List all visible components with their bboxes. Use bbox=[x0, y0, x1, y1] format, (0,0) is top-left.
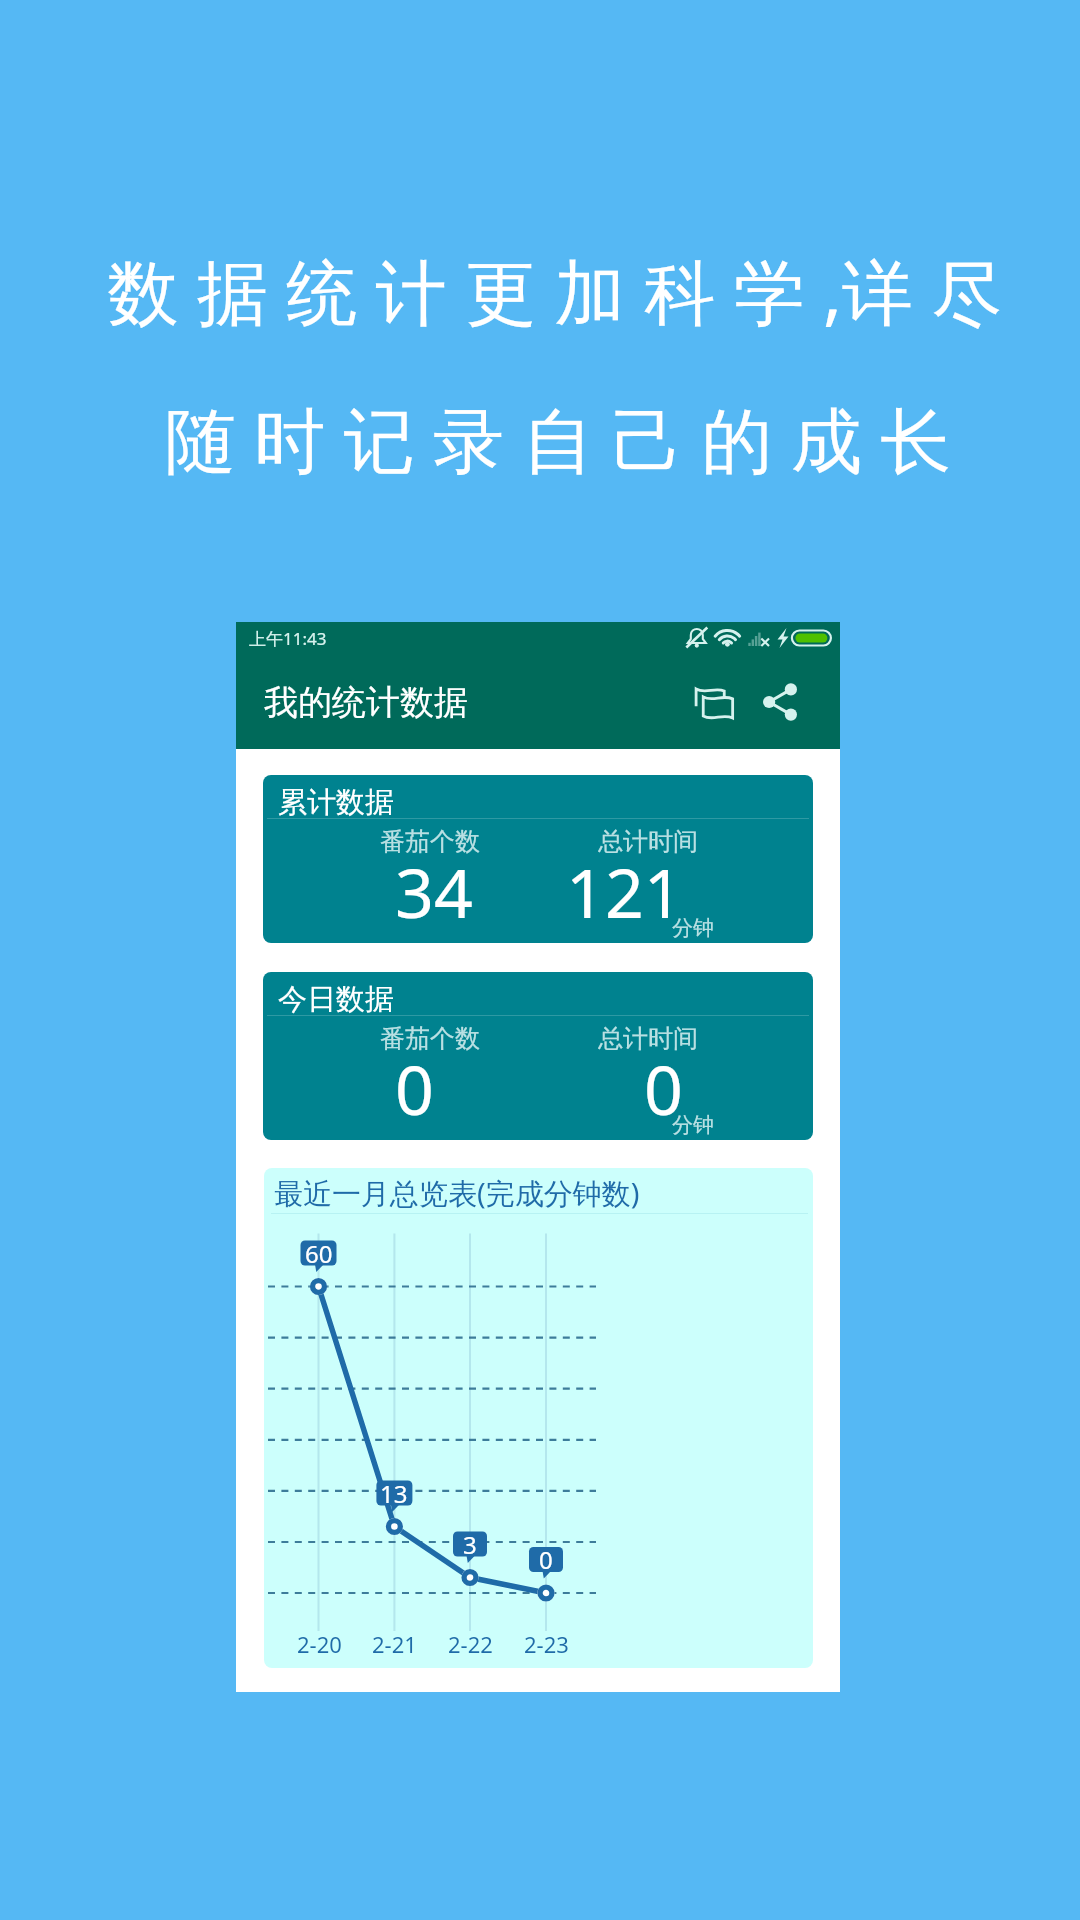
button[interactable]: 累计数据 bbox=[263, 775, 813, 943]
staticText: 番茄个数 bbox=[380, 826, 480, 857]
staticText: 13 bbox=[380, 1477, 408, 1510]
staticText: 0 bbox=[395, 1042, 434, 1135]
staticText: 3 bbox=[463, 1528, 477, 1561]
staticText: 60 bbox=[305, 1237, 333, 1270]
button[interactable]: Collections bbox=[685, 673, 745, 733]
staticText: 总计时间 bbox=[598, 1023, 698, 1054]
staticText: 最近一月总览表(完成分钟数) bbox=[274, 1173, 640, 1213]
staticText: 121 bbox=[566, 845, 683, 938]
button[interactable]: 最近一月总览表(完成分钟数) bbox=[264, 1168, 813, 1668]
button[interactable]: 今日数据 bbox=[263, 972, 813, 1140]
staticText: 2-21 bbox=[372, 1629, 417, 1659]
staticText: 我的统计数据 bbox=[264, 681, 468, 724]
staticText: 2-22 bbox=[448, 1629, 493, 1659]
staticText: 分钟 bbox=[672, 1112, 714, 1138]
staticText: 番茄个数 bbox=[380, 1023, 480, 1054]
staticText: 0 bbox=[644, 1042, 683, 1135]
staticText: 数 据 统 计 更 加 科 学 ,详 尽 bbox=[15, 242, 1080, 339]
staticText: 累计数据 bbox=[278, 784, 394, 821]
staticText: 今日数据 bbox=[278, 981, 394, 1018]
staticText: 34 bbox=[395, 845, 473, 938]
staticText: 2-23 bbox=[524, 1629, 569, 1659]
staticText: 总计时间 bbox=[598, 826, 698, 857]
staticText: 2-20 bbox=[297, 1629, 342, 1659]
staticText: 0 bbox=[539, 1543, 553, 1576]
staticText: 分钟 bbox=[672, 915, 714, 941]
staticText: 上午11:43 bbox=[249, 627, 327, 650]
button[interactable]: Share bbox=[750, 672, 810, 732]
staticText: 随 时 记 录 自 己 的 成 长 bbox=[18, 390, 1080, 487]
